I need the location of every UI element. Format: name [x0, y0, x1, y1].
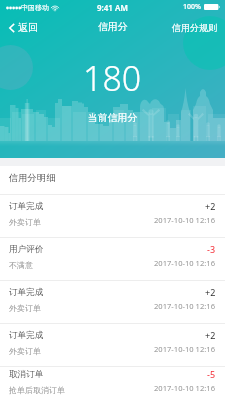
- staticText: 返回: [18, 21, 38, 34]
- staticText: 不满意: [9, 260, 33, 270]
- staticText: 信用分明细: [9, 172, 56, 184]
- staticText: +2: [205, 200, 216, 212]
- button[interactable]: 订单完成: [0, 324, 225, 366]
- staticText: 2017-10-10 12:16: [154, 344, 216, 354]
- staticText: 当前信用分: [88, 112, 137, 124]
- button[interactable]: 信用分规则: [164, 22, 225, 33]
- staticText: 信用分规则: [172, 22, 217, 33]
- staticText: 取消订单: [9, 369, 44, 380]
- button[interactable]: 返回: [0, 21, 46, 34]
- staticText: 2017-10-10 12:16: [154, 383, 216, 393]
- staticText: 用户评价: [9, 244, 44, 255]
- staticText: 订单完成: [9, 287, 44, 298]
- button[interactable]: 取消订单: [0, 367, 225, 400]
- staticText: 订单完成: [9, 201, 44, 212]
- staticText: 100%: [183, 2, 201, 12]
- button[interactable]: 用户评价: [0, 238, 225, 280]
- staticText: 中国移动: [21, 3, 49, 12]
- staticText: 外卖订单: [9, 303, 41, 313]
- staticText: 9:41 AM: [97, 2, 128, 13]
- staticText: -5: [207, 368, 216, 380]
- staticText: 订单完成: [9, 330, 44, 341]
- staticText: 180: [83, 55, 142, 101]
- staticText: 抢单后取消订单: [9, 385, 65, 395]
- staticText: 外卖订单: [9, 217, 41, 227]
- staticText: +2: [205, 286, 216, 298]
- staticText: 2017-10-10 12:16: [154, 301, 216, 311]
- staticText: 外卖订单: [9, 346, 41, 356]
- staticText: 信用分: [98, 21, 128, 33]
- staticText: 2017-10-10 12:16: [154, 215, 216, 225]
- other: 返回: [9, 23, 15, 33]
- staticText: +2: [205, 329, 216, 341]
- button[interactable]: 订单完成: [0, 281, 225, 323]
- staticText: 2017-10-10 12:16: [154, 258, 216, 268]
- staticText: -3: [207, 243, 216, 255]
- button[interactable]: 订单完成: [0, 195, 225, 237]
